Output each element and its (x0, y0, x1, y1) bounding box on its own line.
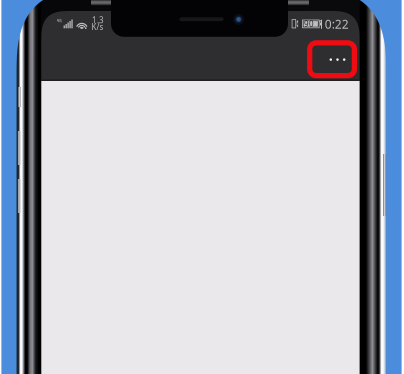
staticText: 90 (304, 19, 314, 29)
button[interactable]: More options (307, 40, 357, 78)
staticText: 1.3 (92, 15, 104, 25)
staticText: 10:22 (318, 16, 349, 32)
staticText: K/s (92, 22, 104, 32)
